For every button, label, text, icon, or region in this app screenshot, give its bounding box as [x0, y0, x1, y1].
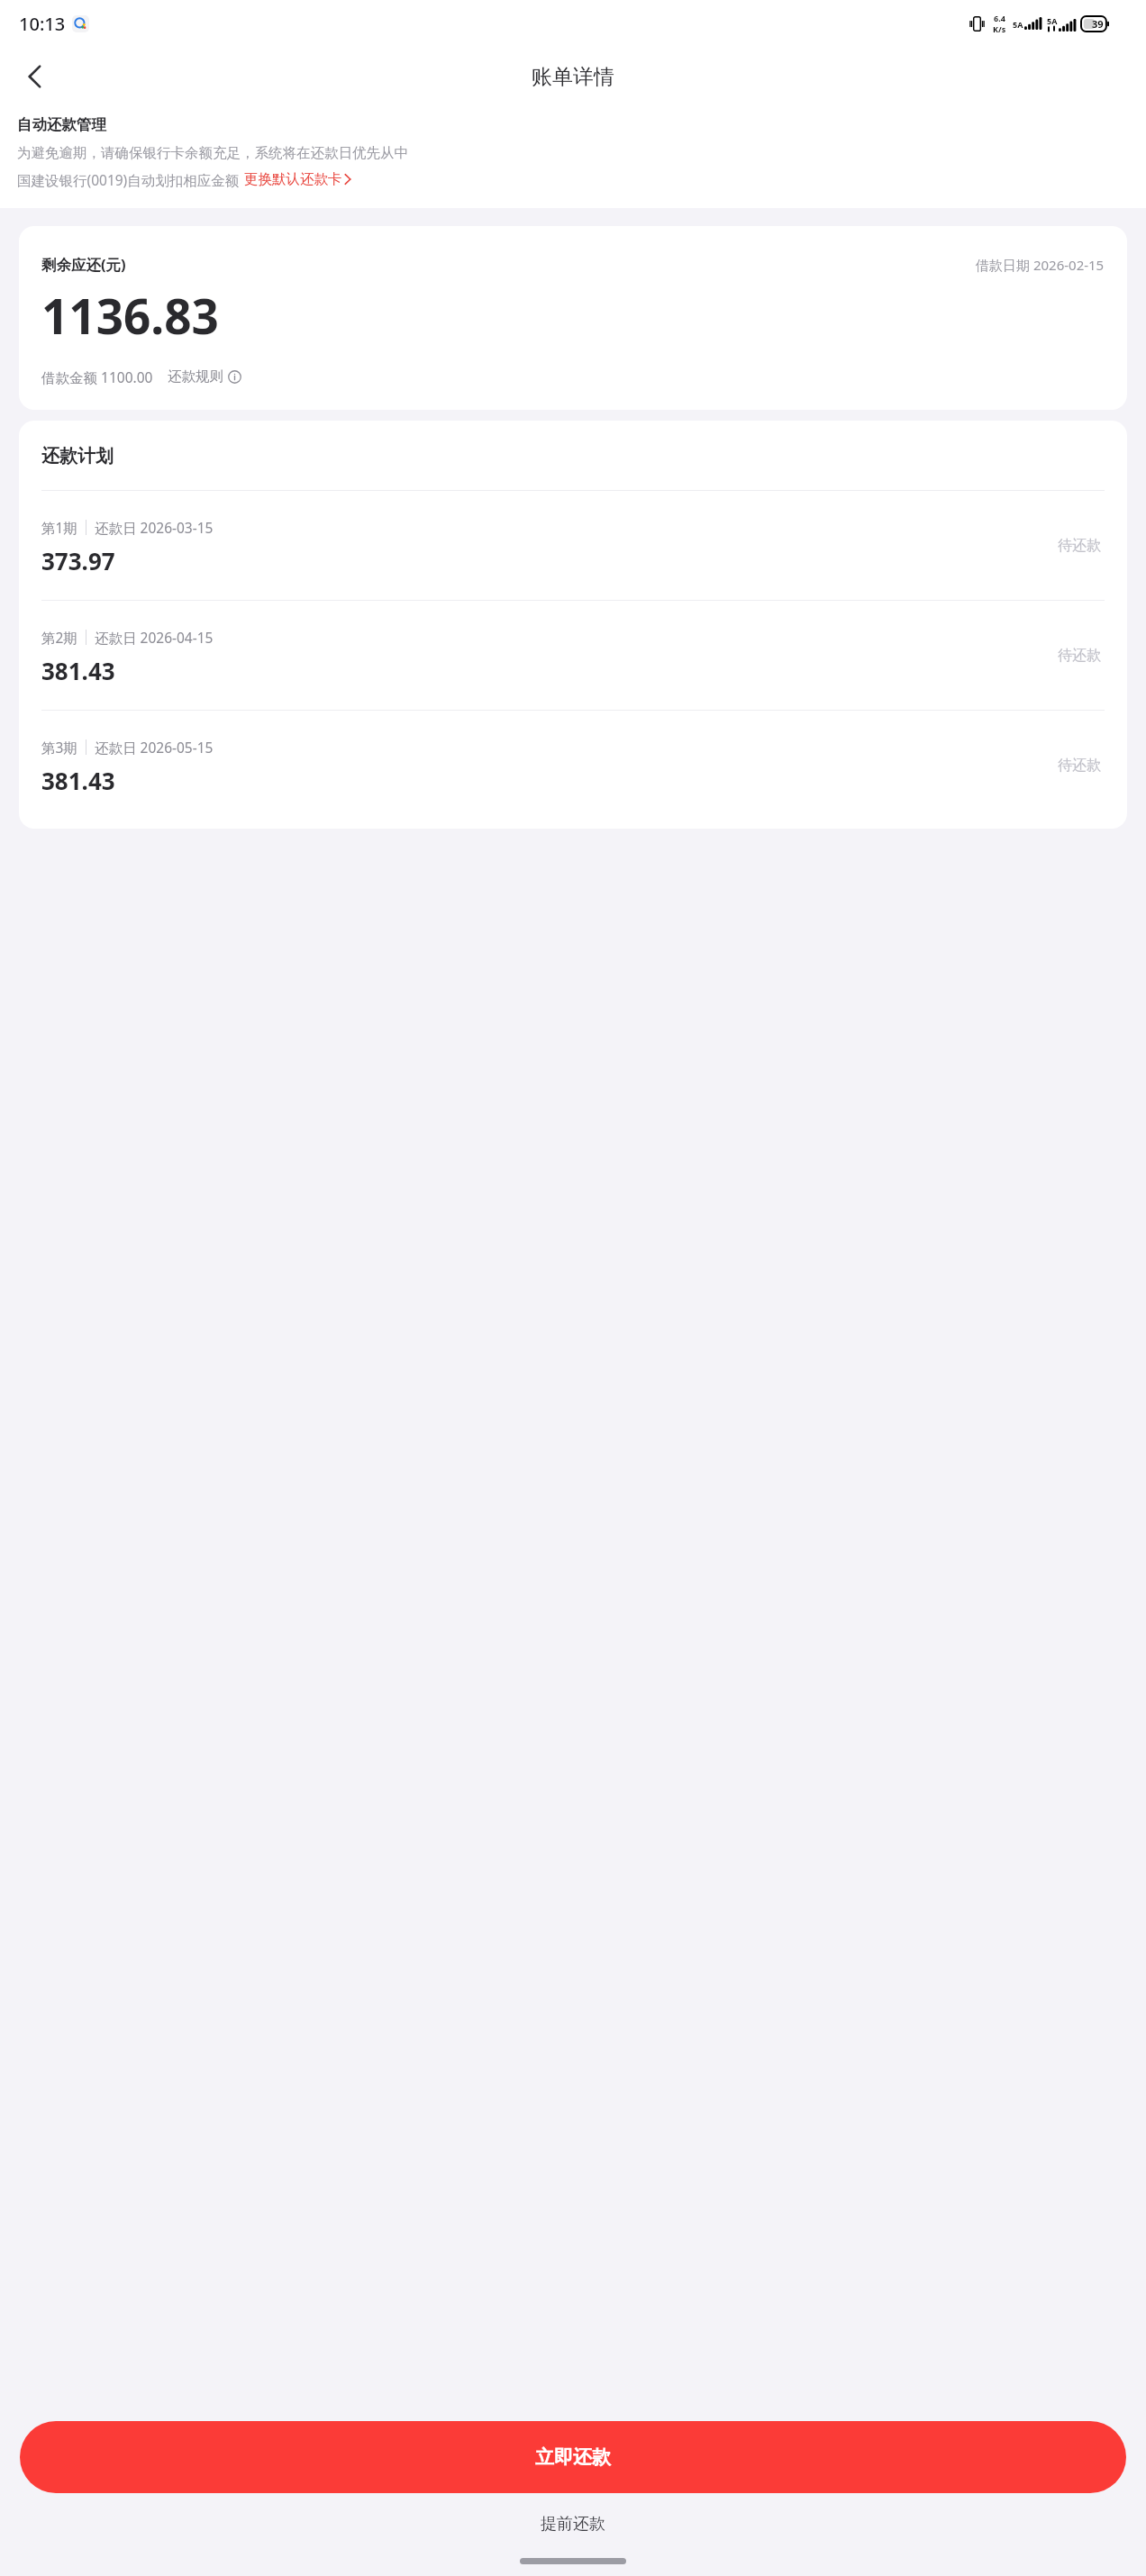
button[interactable]: 返回	[9, 51, 59, 102]
staticText: 第1期	[41, 518, 77, 537]
button[interactable]: 剩余应还(元)	[19, 226, 1127, 410]
staticText: 还款计划	[41, 445, 114, 467]
staticText: 373.97	[41, 545, 115, 576]
staticText: 借款金额 1100.00	[41, 367, 153, 386]
staticText: 5A	[1047, 15, 1058, 26]
staticText: 381.43	[41, 765, 115, 796]
staticText: 账单详情	[532, 64, 614, 90]
staticText: 更换默认还款卡	[244, 170, 342, 188]
staticText: 第2期	[41, 628, 77, 647]
staticText: 为避免逾期，请确保银行卡余额充足，系统将在还款日优先从中	[17, 144, 408, 162]
staticText: 剩余应还(元)	[41, 254, 126, 275]
staticText: 提前还款	[541, 2514, 605, 2535]
button[interactable]: 还款规则	[168, 366, 241, 387]
staticText: 还款规则	[168, 367, 223, 385]
button[interactable]: 第3期	[41, 711, 1105, 820]
staticText: 还款日 2026-03-15	[95, 518, 214, 537]
staticText: 1136.83	[41, 283, 219, 348]
staticText: 待还款	[1058, 537, 1101, 555]
button[interactable]: 第2期	[41, 601, 1105, 710]
staticText: 立即还款	[535, 2445, 611, 2469]
staticText: 39	[1092, 17, 1104, 31]
staticText: 381.43	[41, 655, 115, 686]
staticText: 待还款	[1058, 757, 1101, 775]
button[interactable]: 提前还款	[524, 2508, 622, 2540]
button[interactable]: 第1期	[41, 491, 1105, 600]
staticText: 10:13	[19, 12, 66, 36]
staticText: 5A	[1013, 19, 1023, 30]
staticText: 还款日 2026-05-15	[95, 738, 214, 757]
staticText: 第3期	[41, 738, 77, 757]
staticText: 还款日 2026-04-15	[95, 628, 214, 647]
staticText: 借款日期 2026-02-15	[976, 256, 1105, 274]
staticText: 6.4	[994, 13, 1005, 23]
staticText: 待还款	[1058, 647, 1101, 665]
button[interactable]: 立即还款	[20, 2421, 1126, 2493]
button[interactable]: 更换默认还款卡	[243, 168, 352, 190]
staticText: 国建设银行(0019)自动划扣相应金额	[17, 170, 240, 189]
staticText: 自动还款管理	[17, 115, 106, 134]
staticText: K/s	[993, 23, 1006, 34]
